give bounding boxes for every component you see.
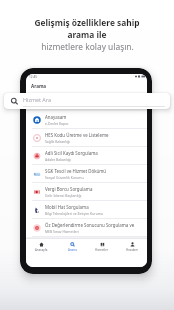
button[interactable]: HES Kodu Üretme ve Listeleme [26, 129, 147, 147]
staticText: Anayasam [45, 114, 67, 120]
staticText: Arama [68, 248, 77, 252]
button[interactable]: Vergi Borcu Sorgulama [26, 183, 147, 201]
staticText: Bilgi Teknolojileri ve İletişim Kurumu [45, 211, 103, 216]
staticText: hizmetlere kolay ulaşın. [41, 41, 134, 52]
staticText: e-Devlet Kapısı [45, 121, 69, 126]
button[interactable]: Mobil Hat Sorgulama [26, 201, 147, 219]
staticText: Hizmetler [95, 248, 109, 252]
staticText: Mobil Hat Sorgulama [45, 204, 89, 210]
staticText: MEB Sınav Hizmetleri [45, 229, 79, 234]
button[interactable]: Anayasam [26, 111, 147, 129]
staticText: Adli Sicil Kaydı Sorgulama [45, 150, 98, 156]
staticText: HES Kodu Üretme ve Listeleme [45, 132, 109, 138]
button[interactable]: Anasayfa [26, 239, 57, 267]
other: Ara [10, 97, 19, 106]
staticText: Anasayfa [35, 248, 48, 252]
staticText: Vergi Borcu Sorgulama [45, 186, 93, 192]
staticText: SGK Tescil ve Hizmet Dökümü [45, 168, 107, 174]
staticText: Sosyal Güvenlik Kurumu [45, 175, 84, 180]
button[interactable]: Arama [57, 239, 87, 267]
button[interactable]: Öz Değerlendirme Sonucunu Sorgulama ve S… [26, 219, 147, 237]
staticText: Öz Değerlendirme Sonucunu Sorgulama ve S… [45, 222, 143, 228]
button[interactable]: Hesabım [117, 239, 147, 267]
staticText: arama ile [67, 29, 107, 40]
staticText: Gelişmiş özelliklere sahip [34, 17, 140, 28]
staticText: 12:45 [29, 75, 38, 79]
staticText: Sağlık Bakanlığı [45, 139, 70, 144]
button[interactable]: SGK Tescil ve Hizmet Dökümü [26, 165, 147, 183]
staticText: Hesabım [126, 248, 139, 252]
staticText: Adalet Bakanlığı [45, 157, 71, 162]
button[interactable]: Ara [4, 93, 170, 109]
button[interactable]: Adli Sicil Kaydı Sorgulama [26, 147, 147, 165]
staticText: Hizmet Ara [23, 96, 51, 103]
staticText: Arama [31, 83, 47, 89]
button[interactable]: Hizmetler [87, 239, 117, 267]
staticText: Gelir İdaresi Başkanlığı [45, 193, 82, 198]
